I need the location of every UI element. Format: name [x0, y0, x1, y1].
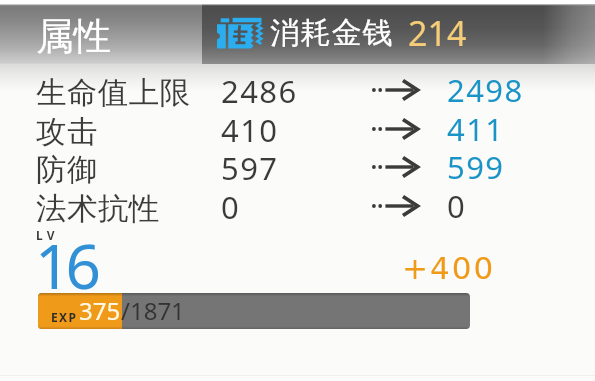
staticText: 16 [35, 223, 96, 307]
staticText: 599 [447, 146, 505, 184]
staticText: 2498 [447, 69, 524, 107]
staticText: 消耗金钱 [270, 14, 394, 52]
button[interactable]: 法术抗性 [0, 116, 595, 154]
staticText: 防御 [36, 151, 98, 189]
staticText: EXP [51, 309, 78, 325]
staticText: 597 [221, 147, 279, 185]
staticText: /1871 [121, 294, 185, 327]
other: Money [217, 17, 262, 49]
staticText: 属性 [36, 13, 111, 60]
staticText: 410 [221, 109, 279, 147]
staticText: 法术抗性 [36, 190, 160, 228]
button[interactable]: EXP [38, 293, 470, 329]
staticText: 375 [79, 294, 121, 327]
button[interactable]: 防御 [0, 77, 595, 115]
staticText: +400 [402, 250, 496, 286]
staticText: 生命值上限 [36, 74, 191, 112]
staticText: 0 [447, 185, 467, 223]
staticText: 411 [447, 108, 505, 146]
staticText: 2486 [221, 70, 298, 108]
staticText: 0 [221, 186, 241, 224]
staticText: LV [36, 227, 59, 243]
staticText: 攻击 [36, 113, 98, 151]
staticText: 214 [408, 10, 467, 56]
button[interactable]: 攻击 [0, 39, 595, 77]
button[interactable]: 生命值上限 [0, 0, 595, 38]
